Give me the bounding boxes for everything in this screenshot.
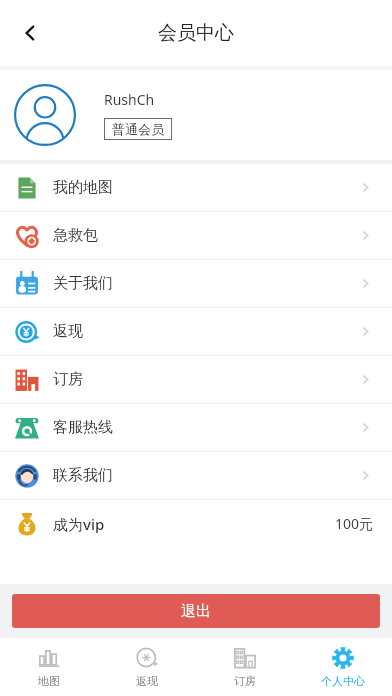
button[interactable]: 订房 (0, 356, 392, 403)
staticText: 关于我们 (53, 274, 113, 293)
button[interactable]: RushCh (0, 70, 392, 160)
button[interactable]: 我的地图 (0, 164, 392, 211)
button[interactable]: 成为vip (0, 500, 392, 547)
staticText: 我的地图 (53, 178, 113, 197)
button[interactable]: 联系我们 (0, 452, 392, 499)
staticText: 急救包 (53, 226, 98, 245)
staticText: 返现 (53, 322, 83, 341)
button[interactable]: 退出 (12, 594, 380, 628)
staticText: 客服热线 (53, 418, 113, 437)
staticText: 个人中心 (321, 674, 365, 688)
button[interactable]: 客服热线 (0, 404, 392, 451)
staticText: 退出 (181, 602, 211, 621)
button[interactable]: 地图 (0, 638, 98, 696)
staticText: 联系我们 (53, 466, 113, 485)
staticText: 100元 (335, 514, 374, 533)
button[interactable]: Back (8, 11, 52, 55)
staticText: 订房 (234, 674, 256, 688)
button[interactable]: 返现 (0, 308, 392, 355)
button[interactable]: 个人中心 (294, 638, 392, 696)
button[interactable]: 普通会员 (112, 121, 164, 137)
staticText: 普通会员 (112, 121, 164, 137)
staticText: 订房 (53, 370, 83, 389)
button[interactable]: 急救包 (0, 212, 392, 259)
staticText: 返现 (136, 674, 158, 688)
button[interactable]: 订房 (196, 638, 294, 696)
button[interactable]: 关于我们 (0, 260, 392, 307)
staticText: 地图 (38, 674, 60, 688)
button[interactable]: 返现 (98, 638, 196, 696)
staticText: 会员中心 (158, 21, 234, 45)
staticText: RushCh (104, 90, 155, 109)
staticText: 成为vip (53, 514, 105, 534)
